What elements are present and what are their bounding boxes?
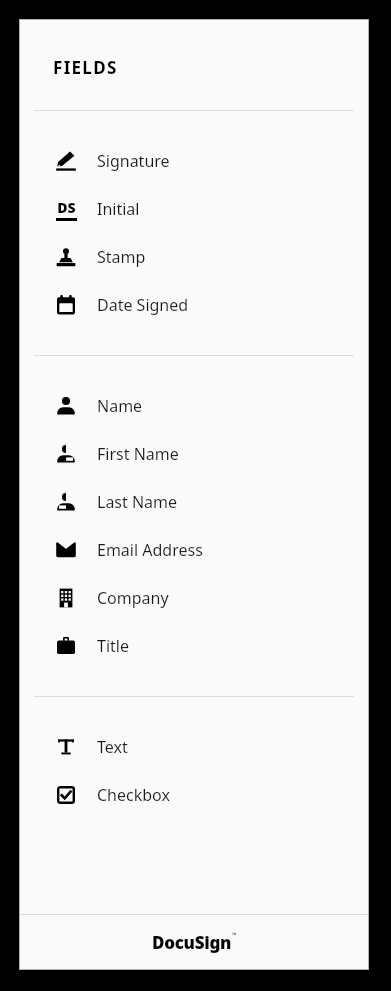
staticText: Title bbox=[97, 635, 129, 657]
staticText: Text bbox=[97, 736, 128, 758]
staticText: First Name bbox=[97, 443, 179, 465]
staticText: Signature bbox=[97, 150, 170, 172]
button[interactable]: First Name bbox=[20, 430, 368, 478]
button[interactable]: Company bbox=[20, 574, 368, 622]
button[interactable]: Name bbox=[20, 382, 368, 430]
staticText: Last Name bbox=[97, 491, 178, 513]
staticText: Initial bbox=[97, 198, 140, 220]
staticText: FIELDS bbox=[53, 56, 118, 79]
staticText: DS bbox=[57, 198, 76, 217]
button[interactable]: Date Signed bbox=[20, 281, 368, 329]
button[interactable]: Stamp bbox=[20, 233, 368, 281]
button[interactable]: Email Address bbox=[20, 526, 368, 574]
button[interactable]: DS bbox=[20, 185, 368, 233]
button[interactable]: Last Name bbox=[20, 478, 368, 526]
button[interactable]: Checkbox bbox=[20, 771, 368, 819]
button[interactable]: Signature bbox=[20, 137, 368, 185]
staticText: ™ bbox=[232, 931, 237, 939]
button[interactable]: Text bbox=[20, 723, 368, 771]
staticText: DocuSign bbox=[152, 931, 232, 954]
staticText: Stamp bbox=[97, 246, 146, 268]
staticText: Name bbox=[97, 395, 143, 417]
staticText: Email Address bbox=[97, 539, 203, 561]
staticText: Company bbox=[97, 587, 169, 609]
staticText: Checkbox bbox=[97, 784, 170, 806]
button[interactable]: Title bbox=[20, 622, 368, 670]
staticText: Date Signed bbox=[97, 294, 189, 316]
